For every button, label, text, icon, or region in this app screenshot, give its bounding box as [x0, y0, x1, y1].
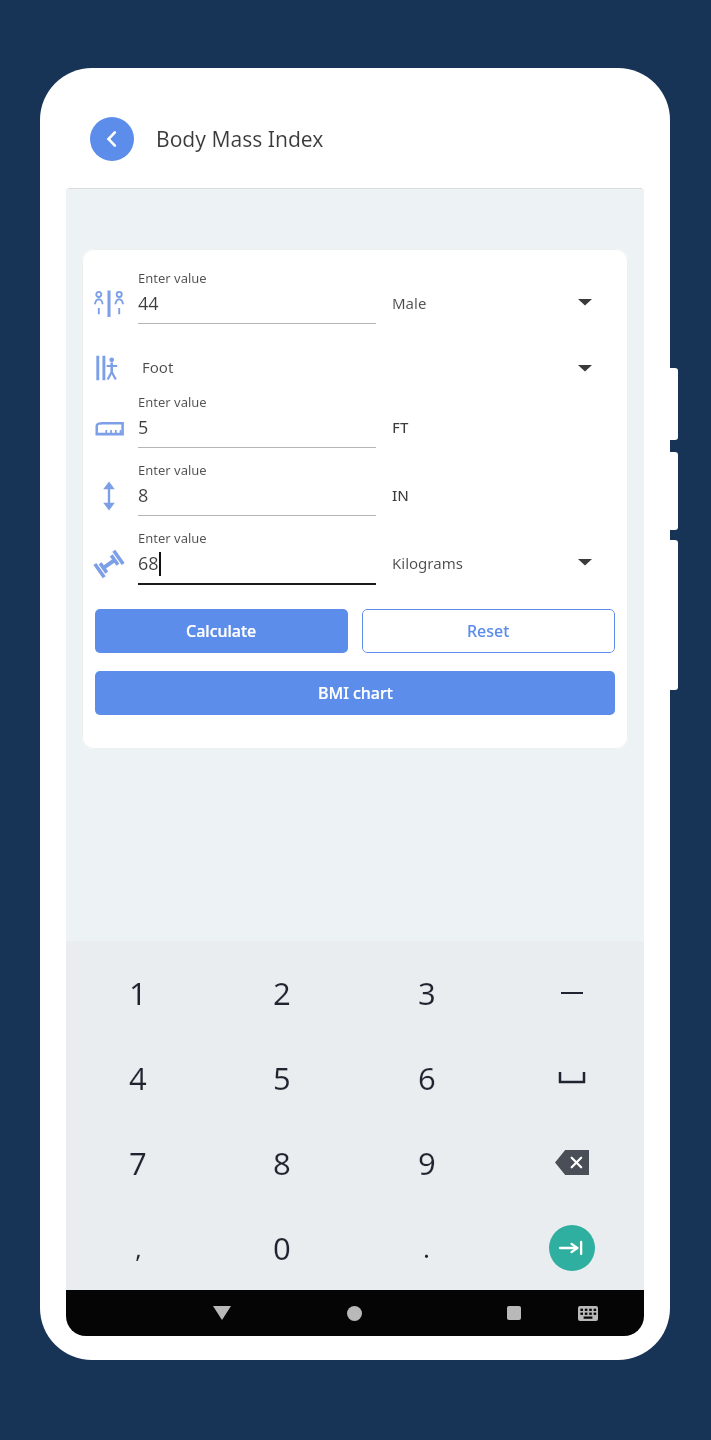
staticText: 3: [418, 972, 436, 1014]
staticText: 1: [129, 972, 147, 1014]
button[interactable]: Home: [324, 1290, 384, 1336]
staticText: Male: [392, 293, 427, 313]
button[interactable]: BMI chart: [95, 671, 615, 715]
button[interactable]: 6: [354, 1035, 499, 1120]
staticText: Body Mass Index: [156, 125, 324, 154]
staticText: 2: [273, 972, 291, 1014]
button[interactable]: 8: [210, 1120, 354, 1205]
button[interactable]: 0: [210, 1205, 354, 1290]
button[interactable]: ,: [66, 1205, 210, 1290]
button[interactable]: 4: [66, 1035, 210, 1120]
staticText: 5: [138, 415, 149, 440]
button[interactable]: 3: [354, 951, 499, 1035]
staticText: ,: [135, 1230, 142, 1265]
staticText: Enter value: [138, 269, 207, 287]
button[interactable]: Kilograms: [392, 545, 602, 579]
button[interactable]: Foot: [82, 341, 628, 393]
staticText: 7: [129, 1142, 147, 1184]
staticText: Foot: [142, 357, 174, 377]
button[interactable]: Enter: [499, 1205, 644, 1290]
staticText: 9: [418, 1142, 436, 1184]
staticText: 68: [138, 551, 159, 576]
staticText: FT: [392, 417, 409, 437]
staticText: Calculate: [186, 620, 257, 642]
button[interactable]: Keyboard: [560, 1290, 616, 1336]
button[interactable]: 1: [66, 951, 210, 1035]
button[interactable]: Male: [392, 285, 602, 319]
staticText: Enter value: [138, 393, 207, 411]
staticText: 44: [138, 291, 159, 316]
staticText: 8: [138, 483, 149, 508]
staticText: Reset: [467, 620, 510, 642]
button[interactable]: 5: [210, 1035, 354, 1120]
staticText: 6: [418, 1057, 436, 1099]
button[interactable]: Back: [192, 1290, 252, 1336]
staticText: Kilograms: [392, 553, 463, 573]
staticText: IN: [392, 485, 409, 505]
staticText: .: [423, 1230, 430, 1265]
button[interactable]: .: [354, 1205, 499, 1290]
button[interactable]: Dash: [499, 951, 644, 1035]
staticText: 0: [273, 1227, 291, 1269]
button[interactable]: Space: [499, 1035, 644, 1120]
staticText: 5: [273, 1057, 291, 1099]
button[interactable]: Reset: [362, 609, 615, 653]
button[interactable]: Calculate: [95, 609, 348, 653]
staticText: 8: [273, 1142, 291, 1184]
button[interactable]: Recents: [486, 1290, 542, 1336]
button[interactable]: 9: [354, 1120, 499, 1205]
staticText: Enter value: [138, 461, 207, 479]
staticText: BMI chart: [318, 682, 393, 704]
staticText: Enter value: [138, 529, 207, 547]
button[interactable]: Backspace: [499, 1120, 644, 1205]
button[interactable]: 7: [66, 1120, 210, 1205]
button[interactable]: Back: [90, 117, 134, 161]
button[interactable]: 2: [210, 951, 354, 1035]
staticText: 4: [129, 1057, 147, 1099]
